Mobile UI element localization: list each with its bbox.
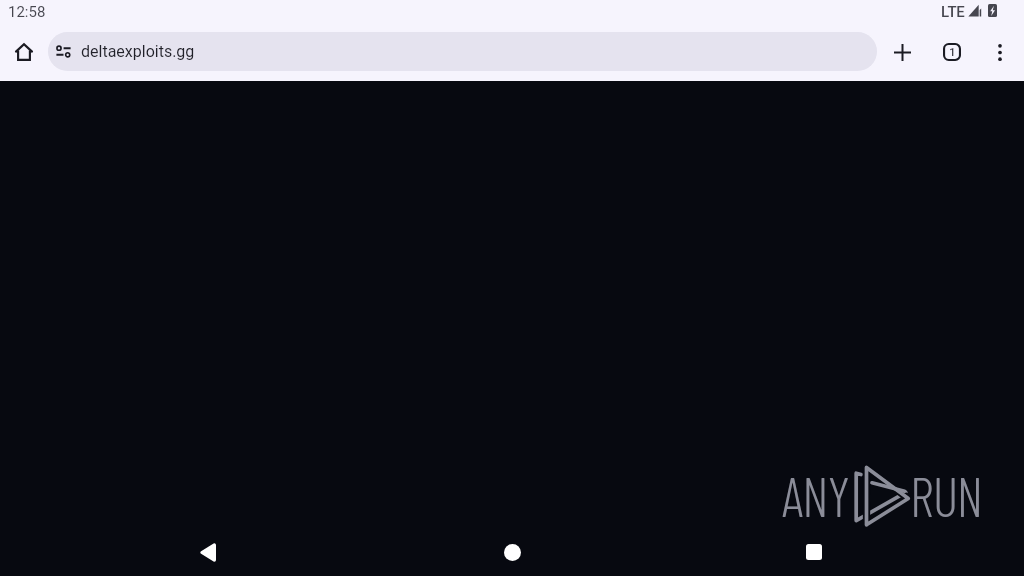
button[interactable]: deltaexploits.gg (48, 32, 877, 71)
button[interactable]: Back (184, 528, 232, 576)
button[interactable]: Switch or close tabs, 1 tab (930, 30, 974, 74)
staticText: deltaexploits.gg (81, 42, 195, 61)
staticText: 1 (949, 46, 956, 59)
button[interactable]: Home (2, 30, 46, 74)
staticText: 12:58 (8, 3, 46, 21)
button[interactable]: Customize and control Chrome (978, 30, 1022, 74)
button[interactable]: Recent apps (790, 528, 838, 576)
button[interactable]: New tab (880, 30, 924, 74)
staticText: LTE (941, 3, 965, 21)
staticText: RUN (910, 463, 983, 528)
button[interactable]: Home (488, 528, 536, 576)
staticText: ANY (782, 463, 850, 528)
